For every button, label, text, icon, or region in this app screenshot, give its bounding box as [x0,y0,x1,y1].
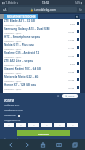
button[interactable]: Телефони и устр. [0,108,85,113]
button[interactable]: Телевизия [0,113,85,118]
button[interactable]: Realme C35 – Android 12 [3,51,80,59]
staticText: •• [33,124,35,127]
button[interactable]: 🔒 t-mobilebg.com [8,7,77,12]
staticText: •• [8,124,10,127]
staticText: Мобилен инт. [4,104,20,107]
staticText: ZTE Blade A31 – 32 GB [4,19,35,23]
staticText: •• [72,124,74,127]
staticText: Xiaomi Redmi 10C – 64 GB [4,67,41,71]
button[interactable]: •• [28,123,39,127]
staticText: Samsung Galaxy A13 – Dual SIM [4,27,50,31]
staticText: •• [46,124,48,127]
staticText: 54% ▮ [75,1,83,5]
staticText: Наличен – дост. [4,48,22,51]
button[interactable]: •• [67,123,78,127]
staticText: Honor X7 – 128 GB син [4,83,37,87]
button[interactable]: Поддръжка кл. [0,118,85,123]
button[interactable]: •• [4,123,14,127]
staticText: Наличен – дост. [4,56,22,59]
staticText: 🔍 Търси [65,95,75,98]
staticText: HTC – Smartphone черен [4,35,41,39]
button[interactable]: Close [75,15,79,19]
button[interactable]: •• [54,123,65,127]
staticText: © 2023 Т-Мобайл ЕАД [4,138,28,139]
button[interactable]: ZTE A52 Lite – черен [3,59,80,67]
button[interactable]: Мобилен инт. [0,103,85,108]
staticText: Motorola Moto G22 – 4G [4,75,39,79]
button[interactable]: Share [37,139,48,150]
staticText: Наличен – дост. [4,88,22,91]
button[interactable]: МОБИЛНИ ТЕЛЕФОНИ [4,14,38,19]
staticText: Наличен – дост. [4,64,22,67]
staticText: Nokia G11 – Plus син [4,43,34,47]
staticText: 13.99 [68,70,75,73]
button[interactable]: •• [41,123,52,127]
staticText: Телефони и устр. [4,109,23,112]
staticText: Наличен – дост. [4,24,22,27]
staticText: Наличен – дост. [4,72,22,75]
staticText: ᴀA [3,8,7,12]
staticText: 9.99 [70,22,75,25]
staticText: •• [20,124,22,127]
button[interactable]: •• [16,123,26,127]
staticText: •• [59,124,61,127]
staticText: × [76,15,78,19]
staticText: Наличен – дост. [4,32,22,35]
staticText: 8.99 [70,62,75,65]
button[interactable]: Reload [77,6,84,13]
staticText: 16.99 [68,86,75,89]
button[interactable]: Forward [21,139,32,150]
staticText: 15.99 [68,78,75,81]
staticText: ZTE A52 Lite – черен [4,59,34,63]
button[interactable]: HTC – Smartphone черен [3,35,80,43]
staticText: Наличен – дост. [4,80,22,83]
staticText: ≡ [57,94,60,97]
button[interactable]: УСЛУГИ [0,98,85,103]
button[interactable]: Xiaomi Redmi 10C – 64 GB [3,67,80,75]
button[interactable]: ИЗПРАТИ [17,130,70,136]
button[interactable]: 🔍 Търси [62,94,78,98]
staticText: 11.99 [68,46,75,49]
staticText: 19.99 [68,30,75,33]
button[interactable]: ZTE Blade A31 – 32 GB [3,19,80,27]
staticText: ИЗПРАТИ [38,132,50,135]
button[interactable]: Motorola Moto G22 – 4G [3,75,80,83]
button[interactable]: Reader view [1,6,8,13]
staticText: Поддръжка кл. [4,119,21,122]
button[interactable]: Nokia G11 – Plus син [3,43,80,51]
button[interactable]: Back [5,139,16,150]
staticText: 🔒 t-mobilebg.com [30,8,56,12]
button[interactable]: Tabs [69,139,80,150]
staticText: 12.99 [68,54,75,57]
staticText: ▮▮ T-Mobile ▾ [2,1,18,5]
staticText: 13:52 [42,1,50,5]
button[interactable]: Honor X7 – 128 GB син [3,83,80,91]
button[interactable]: Bookmarks [53,139,64,150]
staticText: МОБИЛНИ ТЕЛЕФОНИ [7,15,36,18]
staticText: Realme C35 – Android 12 [4,51,40,55]
staticText: 14.99 [68,38,75,41]
staticText: ↻ [79,8,82,12]
button[interactable]: Samsung Galaxy A13 – Dual SIM [3,27,80,35]
staticText: УСЛУГИ [4,99,14,102]
staticText: Наличен – дост. [4,40,22,43]
staticText: Телевизия [4,114,16,117]
